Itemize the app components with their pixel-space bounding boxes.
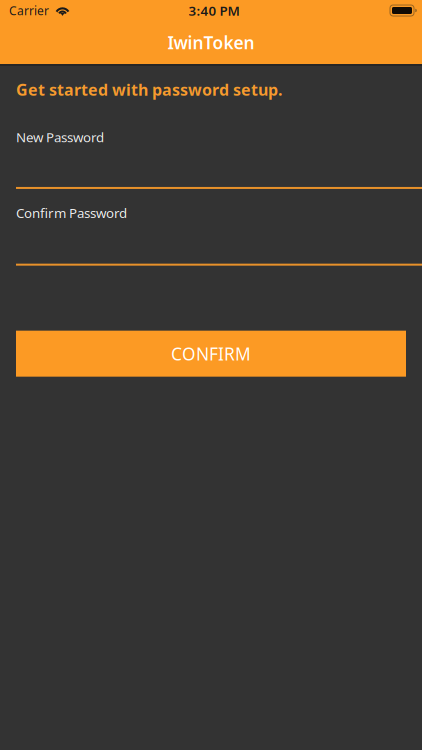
staticText: Confirm Password (16, 204, 127, 222)
button[interactable]: Confirm Password (0, 189, 422, 266)
staticText: Carrier (9, 2, 49, 18)
button[interactable]: New Password (0, 100, 422, 189)
staticText: New Password (16, 128, 104, 146)
button[interactable]: CONFIRM (16, 331, 406, 377)
staticText: 3:40 PM (188, 2, 239, 19)
staticText: CONFIRM (171, 342, 251, 365)
staticText: IwinToken (167, 31, 254, 54)
staticText: Get started with password setup. (16, 79, 282, 100)
